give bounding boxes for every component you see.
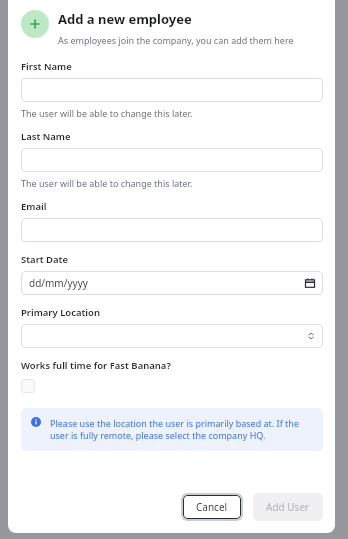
- button[interactable]: [21, 78, 323, 102]
- staticText: Add a new employee: [58, 10, 192, 28]
- staticText: The user will be able to change this lat…: [21, 177, 193, 189]
- staticText: Primary Location: [21, 306, 100, 319]
- staticText: dd/mm/yyyy: [29, 276, 88, 290]
- staticText: Last Name: [21, 130, 71, 143]
- staticText: Please use the location the user is prim…: [50, 417, 313, 442]
- button[interactable]: [21, 148, 323, 172]
- staticText: The user will be able to change this lat…: [21, 107, 193, 119]
- staticText: As employees join the company, you can a…: [58, 34, 294, 46]
- staticText: Cancel: [196, 500, 228, 514]
- button[interactable]: Add User: [253, 493, 323, 521]
- button[interactable]: Cancel: [183, 495, 241, 519]
- staticText: Start Date: [21, 253, 69, 266]
- staticText: Works full time for Fast Banana?: [21, 359, 171, 372]
- other: Open calendar: [305, 278, 315, 288]
- staticText: First Name: [21, 60, 72, 73]
- staticText: Add User: [266, 500, 310, 514]
- button[interactable]: [21, 218, 323, 242]
- staticText: Email: [21, 200, 47, 213]
- button[interactable]: Select location: [21, 324, 323, 348]
- other: Select location: [307, 332, 315, 340]
- button[interactable]: dd/mm/yyyy: [21, 271, 323, 295]
- button[interactable]: Works full time checkbox: [21, 379, 35, 393]
